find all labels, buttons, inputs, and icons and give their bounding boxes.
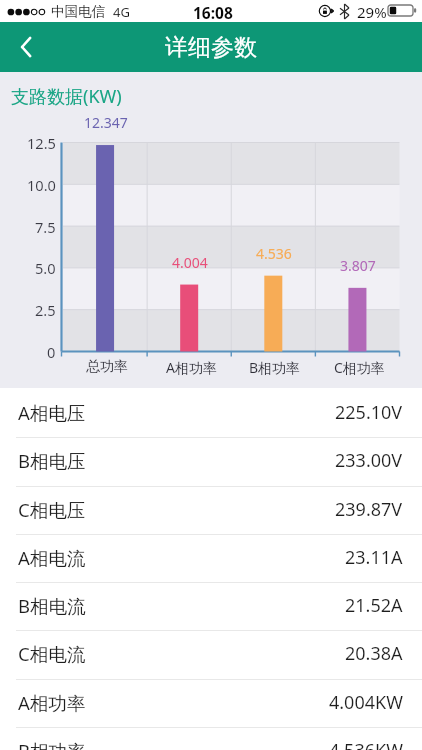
staticText: 4.536KW <box>329 738 403 750</box>
button[interactable]: A相功率 <box>0 678 422 726</box>
staticText: 中国电信 <box>51 3 106 20</box>
staticText: 12.347 <box>84 113 128 132</box>
staticText: A相功率 <box>166 358 217 377</box>
staticText: 239.87V <box>335 497 403 522</box>
staticText: 详细参数 <box>165 33 257 62</box>
staticText: 总功率 <box>86 358 128 376</box>
staticText: B相功率 <box>18 738 86 750</box>
staticText: C相功率 <box>334 358 385 377</box>
button[interactable]: B相功率 <box>0 726 422 750</box>
staticText: 16:08 <box>193 2 233 23</box>
staticText: 4.536 <box>256 244 292 263</box>
button[interactable]: Back <box>0 22 52 72</box>
staticText: C相电流 <box>18 641 86 666</box>
staticText: 3.807 <box>340 256 376 275</box>
staticText: 21.52A <box>345 593 403 618</box>
staticText: 20.38A <box>345 641 403 666</box>
staticText: 4.004KW <box>329 690 403 715</box>
staticText: A相功率 <box>18 690 86 715</box>
staticText: B相功率 <box>249 358 301 377</box>
staticText: 2.5 <box>35 300 56 320</box>
staticText: B相电流 <box>18 593 86 618</box>
staticText: A相电流 <box>18 545 86 570</box>
staticText: 10.0 <box>27 175 56 195</box>
staticText: 支路数据(KW) <box>11 84 122 109</box>
button[interactable]: C相电压 <box>0 485 422 533</box>
button[interactable]: A相电流 <box>0 533 422 581</box>
staticText: 29% <box>357 2 387 22</box>
staticText: 233.00V <box>335 448 403 473</box>
button[interactable]: B相电压 <box>0 436 422 484</box>
button[interactable]: B相电流 <box>0 581 422 629</box>
staticText: 0 <box>47 342 56 362</box>
staticText: 4.004 <box>172 253 208 272</box>
staticText: 4G <box>113 3 130 21</box>
staticText: 225.10V <box>335 400 403 425</box>
staticText: C相电压 <box>18 497 86 522</box>
staticText: 12.5 <box>27 133 56 153</box>
staticText: 23.11A <box>345 545 403 570</box>
button[interactable]: A相电压 <box>0 388 422 436</box>
staticText: A相电压 <box>18 400 86 425</box>
staticText: B相电压 <box>18 448 86 473</box>
staticText: 5.0 <box>35 258 56 278</box>
staticText: 7.5 <box>35 217 56 237</box>
button[interactable]: C相电流 <box>0 629 422 677</box>
